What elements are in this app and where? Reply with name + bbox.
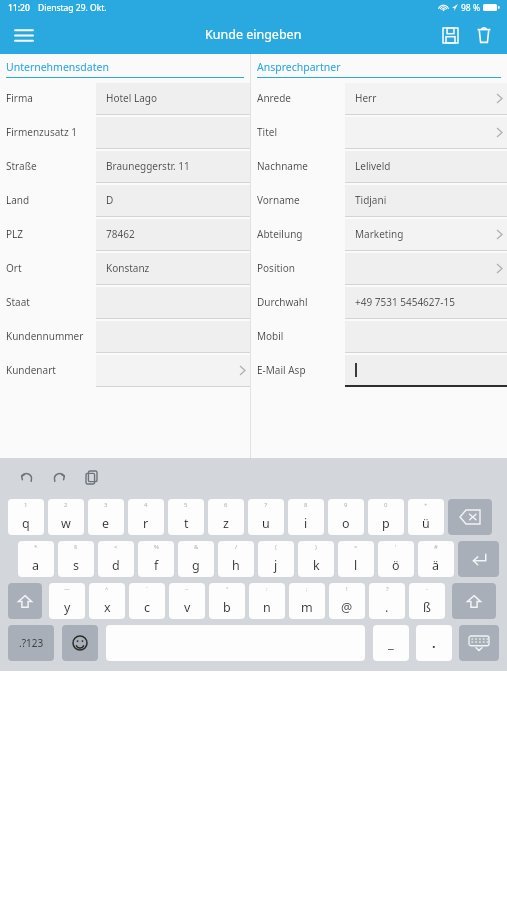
button[interactable]: 7 [248, 499, 284, 535]
button[interactable]: ´ [129, 583, 165, 619]
button[interactable]: ~ [169, 583, 205, 619]
button[interactable]: ) [298, 541, 334, 577]
staticText: 11:20 [8, 2, 30, 14]
button[interactable]: Paste [78, 464, 104, 490]
button[interactable]: < [98, 541, 134, 577]
button[interactable]: ° [209, 583, 245, 619]
button[interactable]: ' [378, 541, 414, 577]
button[interactable]: 4 [128, 499, 164, 535]
staticText: - [426, 585, 428, 593]
staticText: — [64, 585, 71, 593]
button[interactable]: Position [251, 251, 507, 285]
button[interactable]: Abteilung [251, 217, 507, 251]
staticText: Position [257, 261, 295, 275]
button[interactable]: Symbols [8, 625, 54, 661]
button[interactable]: 0 [368, 499, 404, 535]
button[interactable]: Save [433, 18, 467, 52]
button[interactable]: Kundenart [0, 353, 250, 387]
staticText: c [144, 599, 151, 616]
button[interactable]: ? [369, 583, 405, 619]
button[interactable]: 9 [328, 499, 364, 535]
button[interactable]: Firma [0, 81, 250, 115]
button[interactable]: Backspace [448, 499, 492, 535]
button[interactable]: § [58, 541, 94, 577]
staticText: Kundenart [6, 363, 56, 377]
staticText: r [143, 515, 149, 532]
staticText: t [184, 515, 189, 532]
button[interactable]: Delete [467, 18, 501, 52]
button[interactable]: Menu [8, 19, 40, 51]
staticText: Kundennummer [6, 329, 84, 343]
staticText: * [34, 543, 38, 551]
staticText: ^ [105, 585, 109, 593]
staticText: h [232, 557, 240, 574]
button[interactable]: * [18, 541, 54, 577]
button[interactable]: 6 [208, 499, 244, 535]
button[interactable]: PLZ [0, 217, 250, 251]
button[interactable]: Emoji [62, 625, 98, 661]
button[interactable]: 2 [48, 499, 84, 535]
button[interactable]: Hide keyboard [459, 625, 499, 661]
button[interactable]: Titel [251, 115, 507, 149]
button[interactable]: Underscore [373, 625, 409, 661]
staticText: k [313, 557, 320, 574]
button[interactable]: Period [416, 625, 452, 661]
staticText: § [74, 543, 78, 551]
staticText: v [184, 599, 191, 616]
staticText: 3 [104, 501, 108, 509]
button[interactable]: 1 [8, 499, 44, 535]
button[interactable]: Enter [458, 541, 499, 577]
button[interactable]: : [249, 583, 285, 619]
button[interactable]: % [138, 541, 174, 577]
button[interactable]: Straße [0, 149, 250, 183]
staticText: Anrede [257, 91, 291, 105]
button[interactable]: = [338, 541, 374, 577]
button[interactable]: Staat [0, 285, 250, 319]
button[interactable]: ( [258, 541, 294, 577]
button[interactable]: Ort [0, 251, 250, 285]
button[interactable]: Nachname [251, 149, 507, 183]
button[interactable]: ! [329, 583, 365, 619]
staticText: E-Mail Asp [257, 363, 306, 377]
button[interactable]: 5 [168, 499, 204, 535]
staticText: 9 [344, 501, 348, 509]
button[interactable]: E-Mail Asp [251, 353, 507, 387]
staticText: . [385, 599, 389, 616]
staticText: Marketing [355, 227, 404, 241]
staticText: i [304, 515, 308, 532]
staticText: 4 [144, 501, 148, 509]
button[interactable]: Redo [46, 464, 72, 490]
staticText: Ansprechpartner [257, 60, 341, 74]
staticText: Unternehmensdaten [6, 60, 109, 74]
button[interactable]: — [49, 583, 85, 619]
button[interactable]: Undo [14, 464, 40, 490]
button[interactable]: Firmenzusatz 1 [0, 115, 250, 149]
staticText: Abteilung [257, 227, 303, 241]
button[interactable]: ; [289, 583, 325, 619]
button[interactable]: ^ [89, 583, 125, 619]
staticText: & [194, 543, 199, 551]
button[interactable]: Kundennummer [0, 319, 250, 353]
staticText: Land [6, 193, 30, 207]
button[interactable]: 8 [288, 499, 324, 535]
staticText: g [192, 557, 200, 574]
button[interactable]: + [408, 499, 444, 535]
button[interactable]: Shift [8, 583, 42, 619]
button[interactable]: Mobil [251, 319, 507, 353]
button[interactable]: & [178, 541, 214, 577]
button[interactable]: - [409, 583, 445, 619]
button[interactable]: Shift [452, 583, 496, 619]
staticText: 98 % [461, 2, 480, 14]
staticText: p [382, 515, 390, 532]
button[interactable]: Land [0, 183, 250, 217]
button[interactable]: Vorname [251, 183, 507, 217]
button[interactable]: 3 [88, 499, 124, 535]
staticText: l [354, 557, 358, 574]
button[interactable]: # [418, 541, 454, 577]
staticText: Ort [6, 261, 22, 275]
button[interactable]: / [218, 541, 254, 577]
button[interactable]: Anrede [251, 81, 507, 115]
staticText: D [106, 193, 114, 207]
button[interactable]: Durchwahl [251, 285, 507, 319]
